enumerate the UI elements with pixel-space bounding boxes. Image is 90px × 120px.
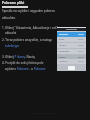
staticText: Programy — [59, 50, 70, 53]
staticText: Seriale — [59, 44, 66, 47]
staticText: 1. Kliknij "Ustawienia, Aktualizacje i c… — [2, 26, 58, 30]
staticText: subskrypc — [5, 44, 20, 48]
staticText: Ukryj — [78, 56, 84, 59]
staticText: Sposób na szybkie i wygodne pobiera — [2, 9, 55, 13]
staticText: Filmy — [59, 38, 65, 41]
staticText: Ukryj — [78, 60, 84, 63]
staticText: 2. Teraz pobierz wszystkie, a następ — [2, 38, 52, 42]
button[interactable]: Pobierz — [68, 66, 75, 70]
staticText: Pobrane — [59, 33, 68, 36]
staticText: aktualni — [5, 31, 17, 35]
staticText: Przeglądaj — [66, 28, 77, 31]
staticText: Wideo — [59, 56, 66, 59]
staticText: Ukryj — [78, 33, 84, 36]
staticText: Ukryj — [78, 50, 84, 53]
staticText: Muzyka — [59, 60, 67, 63]
button[interactable]: Zrzut ekranu aplikacji — [57, 27, 86, 71]
staticText: Pobrane pliki — [2, 0, 25, 5]
staticText: Ukryj — [78, 38, 84, 41]
staticText: aktualnie. — [2, 16, 16, 20]
staticText: 4. Przejdź do sekcji która pole — [2, 61, 44, 65]
staticText: wybierz Pobrane - u Pobrane — [5, 67, 46, 71]
staticText: Ukryj — [78, 44, 84, 47]
staticText: 3. Kliknij P ikonę. Nastę — [2, 55, 35, 59]
